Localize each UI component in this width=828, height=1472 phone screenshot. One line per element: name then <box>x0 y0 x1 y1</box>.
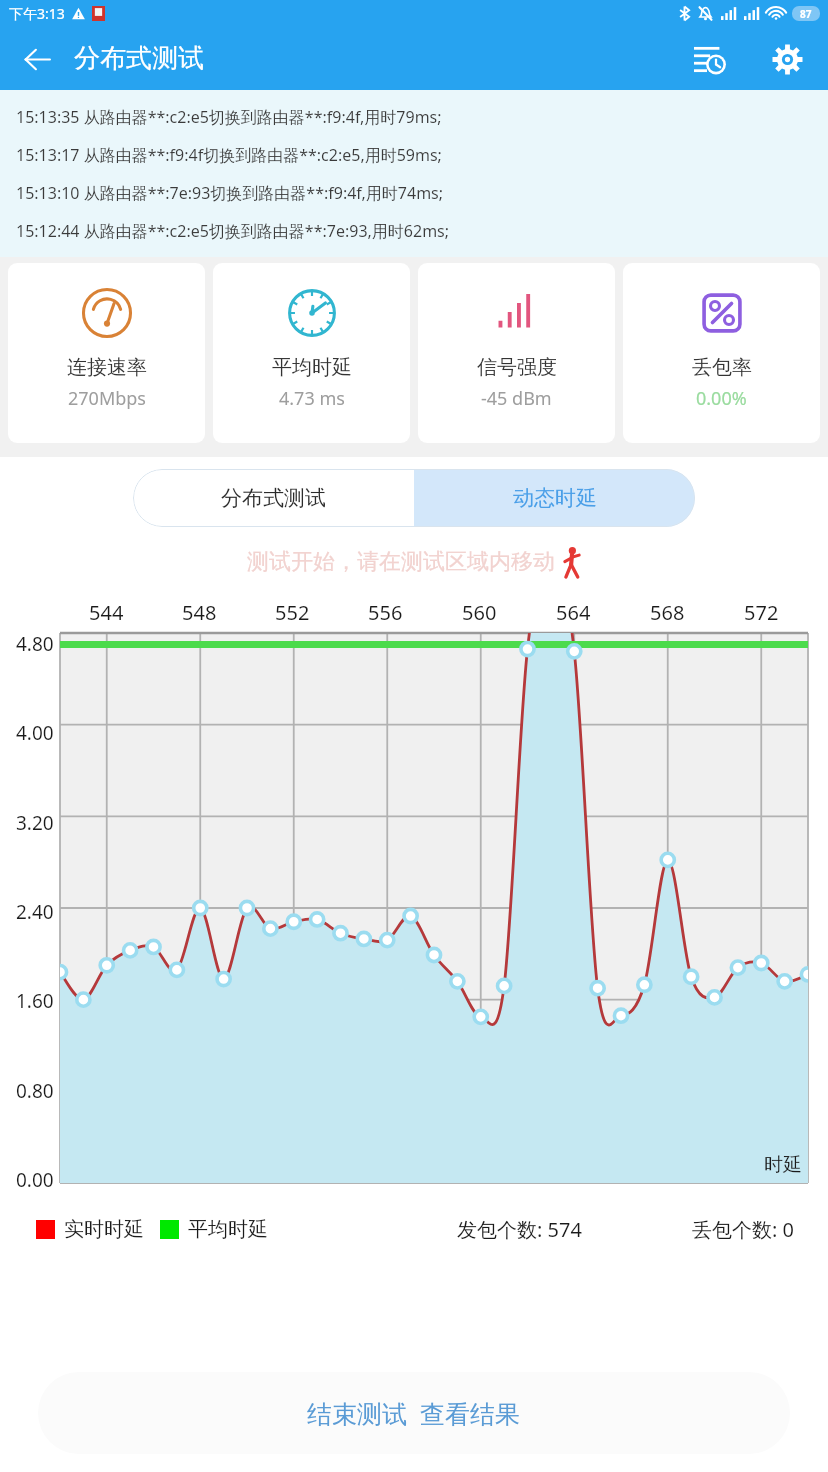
staticText: 2.40 <box>16 899 54 925</box>
staticText: 552 <box>275 599 310 626</box>
staticText: 1.60 <box>16 988 54 1014</box>
staticText: 测试开始，请在测试区域内移动 <box>247 548 555 576</box>
staticText: 实时时延 <box>64 1217 144 1242</box>
staticText: 15:13:17 从路由器**:f9:4f切换到路由器**:c2:e5,用时59… <box>16 144 442 166</box>
staticText: 信号强度 <box>477 355 557 380</box>
staticText: 572 <box>744 599 779 626</box>
staticText: 下午3:13 <box>9 4 65 23</box>
staticText: -45 dBm <box>481 386 552 411</box>
staticText: 发包个数: 574 <box>457 1216 582 1243</box>
staticText: 270Mbps <box>68 386 146 411</box>
staticText: 连接速率 <box>67 355 147 380</box>
staticText: 3.20 <box>16 810 54 836</box>
staticText: 568 <box>650 599 685 626</box>
staticText: 丢包率 <box>692 355 752 380</box>
staticText: 动态时延 <box>513 485 597 511</box>
staticText: 15:12:44 从路由器**:c2:e5切换到路由器**:7e:93,用时62… <box>16 220 450 242</box>
staticText: 556 <box>368 599 403 626</box>
staticText: 560 <box>462 599 497 626</box>
staticText: 分布式测试 <box>221 485 326 511</box>
button[interactable]: 平均时延 <box>213 263 410 443</box>
button[interactable]: 结束测试 查看结果 <box>38 1372 790 1454</box>
staticText: 分布式测试 <box>74 42 204 75</box>
staticText: 0.00 <box>16 1167 54 1193</box>
button[interactable]: Settings <box>760 32 814 86</box>
button[interactable]: History <box>682 32 736 86</box>
staticText: 15:13:35 从路由器**:c2:e5切换到路由器**:f9:4f,用时79… <box>16 106 442 128</box>
staticText: 87 <box>800 7 812 21</box>
staticText: 4.00 <box>16 720 54 746</box>
staticText: 15:13:10 从路由器**:7e:93切换到路由器**:f9:4f,用时74… <box>16 182 444 204</box>
button[interactable]: 丢包率 <box>623 263 820 443</box>
staticText: 548 <box>182 599 217 626</box>
staticText: 0.80 <box>16 1078 54 1104</box>
staticText: 564 <box>556 599 591 626</box>
staticText: 544 <box>89 599 124 626</box>
staticText: 4.80 <box>16 631 54 657</box>
staticText: 平均时延 <box>272 355 352 380</box>
button[interactable]: 分布式测试 <box>133 469 414 527</box>
staticText: 4.73 ms <box>279 386 345 411</box>
button[interactable]: 动态时延 <box>414 469 695 527</box>
staticText: 0.00% <box>696 386 747 411</box>
button[interactable]: Back <box>12 34 62 84</box>
staticText: 平均时延 <box>188 1217 268 1242</box>
staticText: 时延 <box>764 1153 802 1177</box>
staticText: 结束测试 查看结果 <box>307 1396 521 1430</box>
button[interactable]: 连接速率 <box>8 263 205 443</box>
button[interactable]: 信号强度 <box>418 263 615 443</box>
staticText: 丢包个数: 0 <box>692 1216 794 1243</box>
